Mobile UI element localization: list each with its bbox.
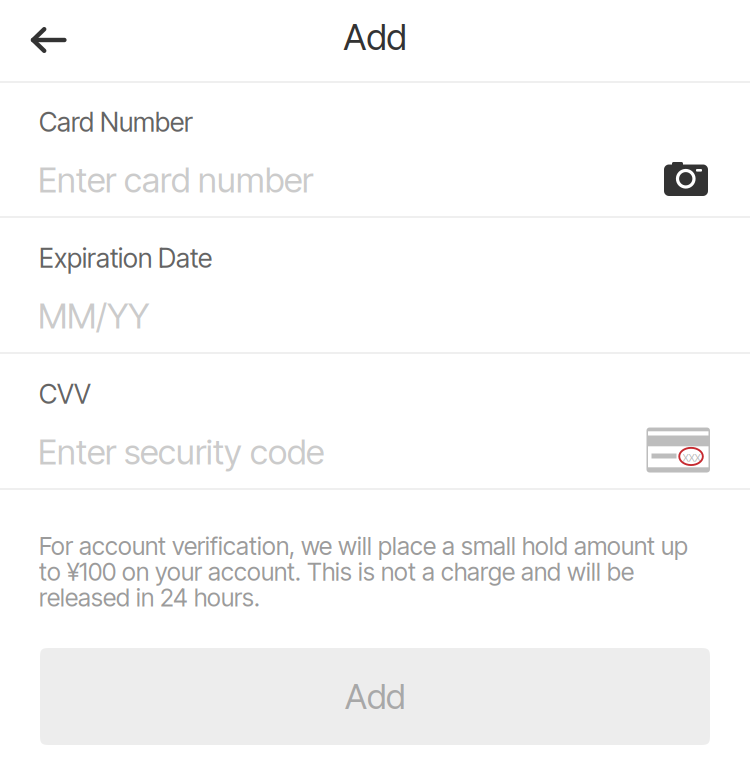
staticText: Card Number xyxy=(39,106,193,138)
button[interactable]: Back xyxy=(12,0,88,80)
staticText: Enter card number xyxy=(38,159,313,201)
staticText: Expiration Date xyxy=(39,242,212,274)
button[interactable]: Scan card with camera xyxy=(664,162,708,196)
staticText: MM/YY xyxy=(38,295,149,337)
staticText: Enter security code xyxy=(38,431,324,473)
staticText: Add xyxy=(345,675,405,717)
staticText: Add xyxy=(343,15,406,59)
button[interactable]: Add xyxy=(40,648,710,745)
button[interactable]: Where to find the CVV xyxy=(646,427,710,472)
staticText: For account verification, we will place … xyxy=(39,531,688,612)
staticText: CVV xyxy=(39,378,91,410)
staticText: XXX xyxy=(682,451,700,464)
